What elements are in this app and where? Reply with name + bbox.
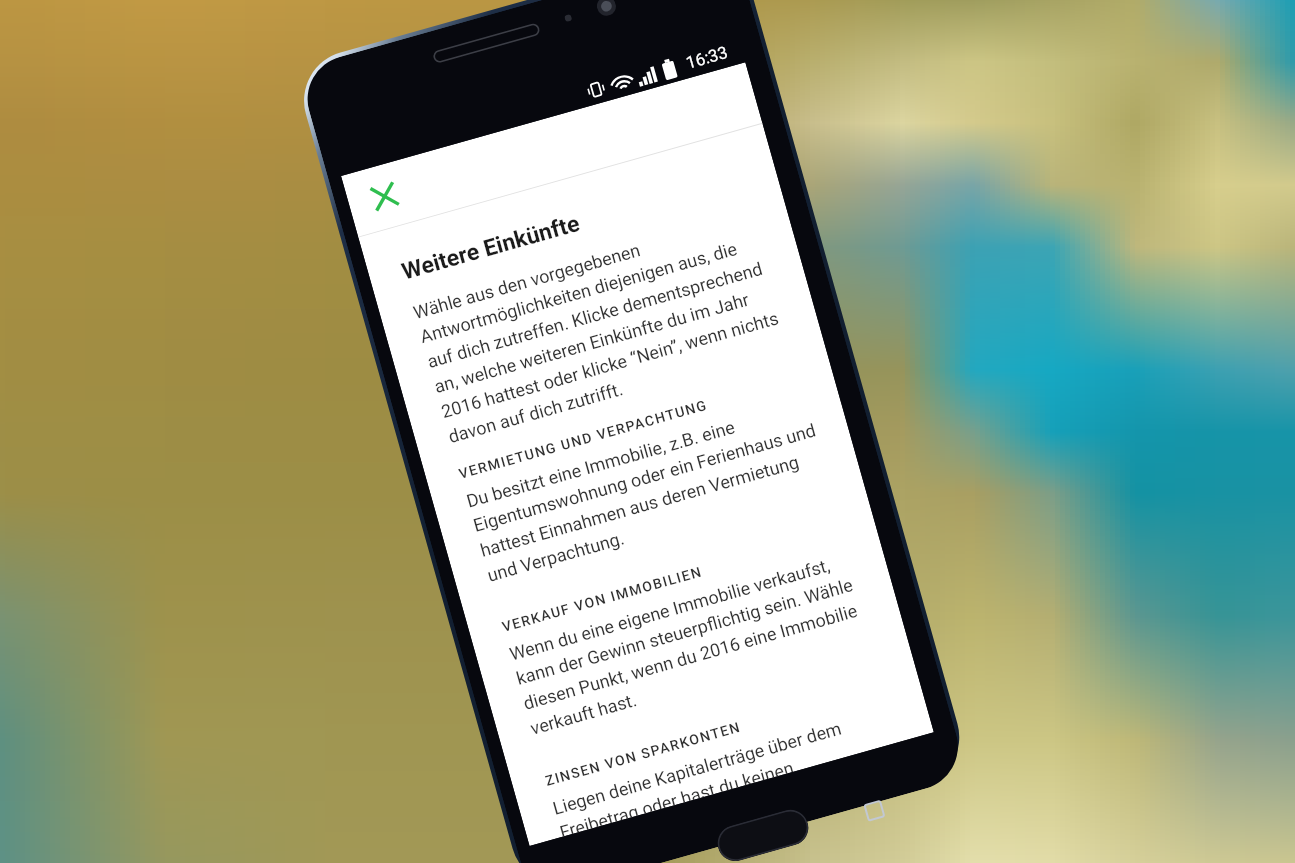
staticText: ZINSEN VON SPARKONTEN — [543, 718, 743, 789]
staticText: Wenn du eine eigene Immobilie verkaufst,… — [507, 548, 877, 740]
button[interactable]: Schliessen — [341, 157, 425, 237]
staticText: Liegen deine Kapitalerträge über dem Fre… — [550, 702, 904, 837]
staticText: VERMIETUNG UND VERPACHTUNG — [457, 396, 710, 482]
staticText: VERKAUF VON IMMOBILIEN — [500, 563, 705, 635]
staticText: Wähle aus den vorgegebenen Antwortmöglic… — [411, 206, 795, 448]
staticText: 16:33 — [684, 42, 730, 73]
staticText: Weitere Einkünfte — [399, 210, 583, 285]
staticText: Du besitzt eine Immobilie, z.B. eine Eig… — [464, 395, 834, 587]
